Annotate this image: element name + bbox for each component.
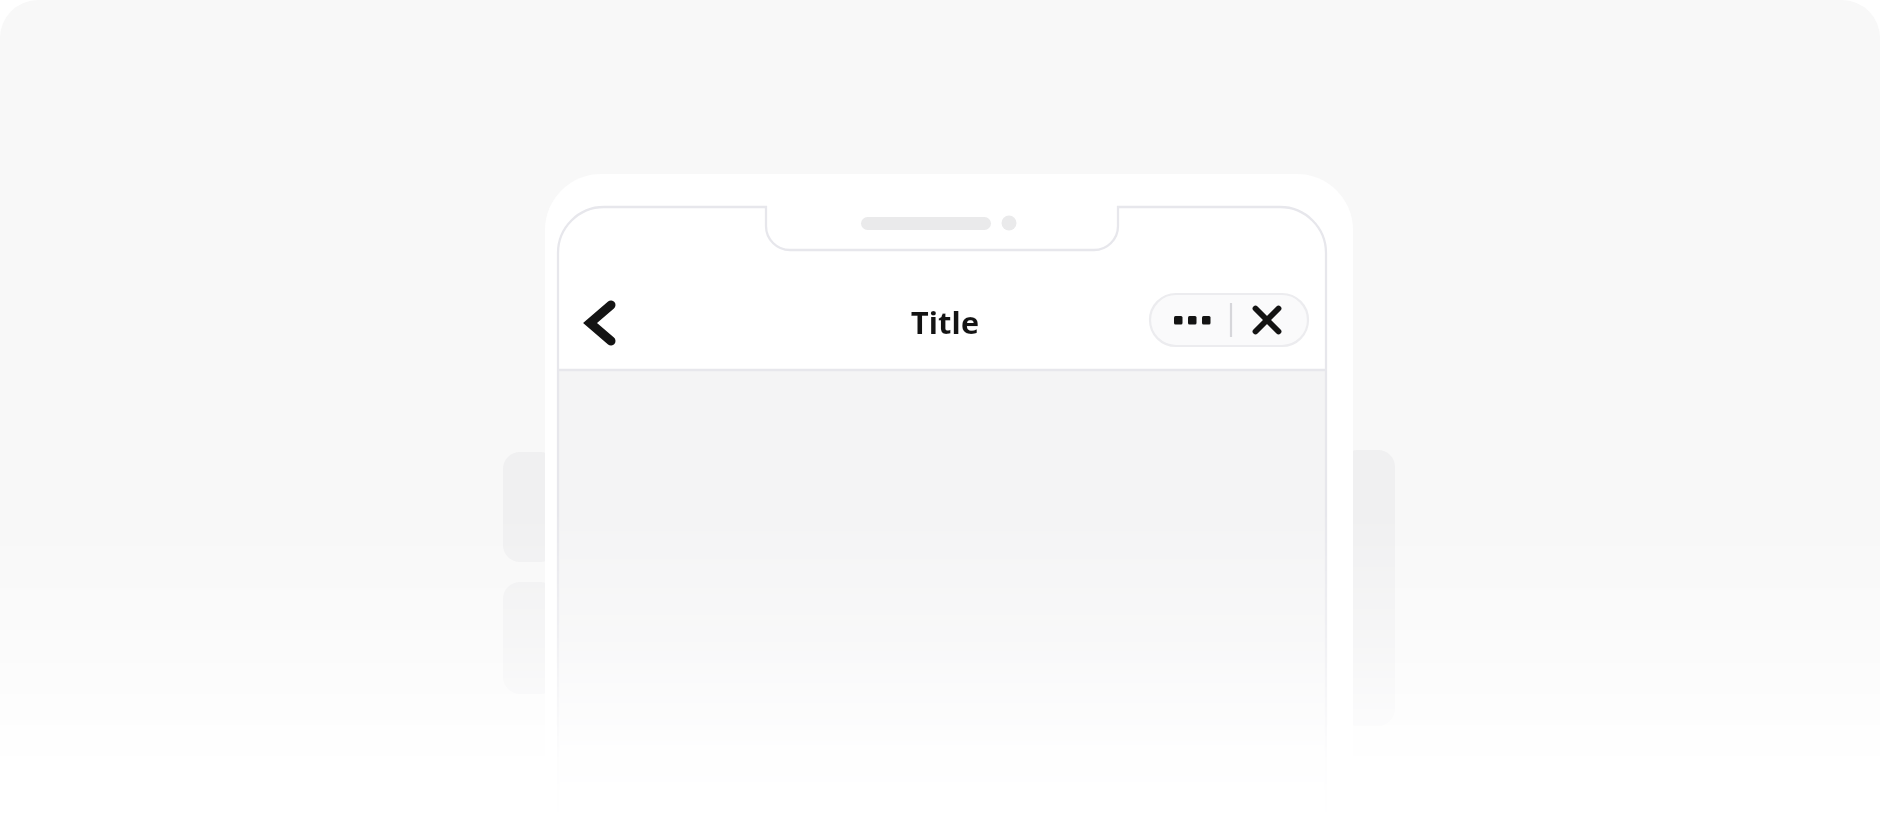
button[interactable]: Back [574,294,628,350]
staticText: Title [858,301,1032,345]
button[interactable]: More options [1150,294,1230,346]
button[interactable]: Close [1230,294,1308,346]
